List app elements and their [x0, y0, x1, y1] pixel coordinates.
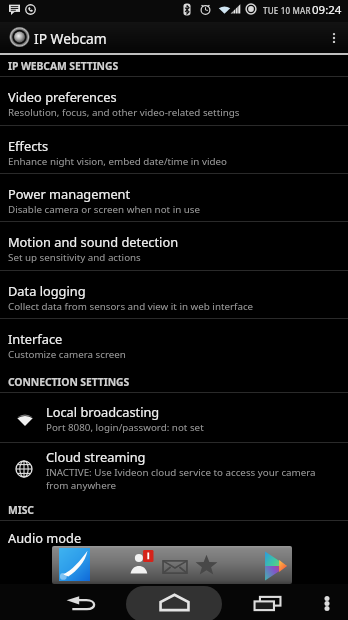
button[interactable]: Power management [0, 174, 348, 222]
staticText: Port 8080, login/password: not set [46, 421, 204, 434]
staticText: MISC [8, 503, 34, 517]
staticText: TUE 10 MAR [263, 5, 311, 16]
button[interactable]: Recent apps [219, 584, 310, 620]
staticText: INACTIVE: Use Ivideon cloud service to a… [46, 466, 332, 492]
staticText: Video preferences [8, 88, 117, 105]
button[interactable]: Mail [162, 558, 188, 576]
button[interactable]: Play Store [263, 551, 289, 581]
button[interactable]: Effects [0, 126, 348, 174]
staticText: 09:24 [312, 2, 342, 18]
staticText: Disable camera or screen when not in use [8, 203, 201, 216]
button[interactable]: Contacts, 1 new [128, 550, 154, 576]
button[interactable]: Messenger [59, 548, 90, 581]
staticText: Interface [8, 330, 63, 347]
staticText: Motion and sound detection [8, 233, 179, 250]
button[interactable]: Audio mode [0, 521, 348, 551]
button[interactable]: More options [320, 22, 348, 53]
staticText: Collect data from sensors and view it in… [8, 300, 254, 313]
staticText: IP Webcam [34, 29, 107, 48]
button[interactable]: Back [0, 584, 129, 620]
button[interactable]: Home [129, 584, 219, 620]
button[interactable]: Local broadcasting [0, 393, 348, 443]
staticText: Set up sensitivity and actions [8, 251, 141, 264]
staticText: Power management [8, 185, 131, 202]
button[interactable]: Video preferences [0, 77, 348, 126]
staticText: Customize camera screen [8, 348, 126, 361]
staticText: Enhance night vision, embed date/time in… [8, 155, 227, 168]
staticText: Local broadcasting [46, 403, 160, 420]
staticText: CONNECTION SETTINGS [8, 375, 130, 389]
staticText: IP WEBCAM SETTINGS [8, 59, 119, 73]
button[interactable]: Cloud streaming [0, 443, 348, 496]
staticText: Cloud streaming [46, 448, 146, 465]
staticText: Audio mode [8, 529, 82, 546]
button[interactable]: Interface [0, 319, 348, 368]
button[interactable]: Data logging [0, 271, 348, 319]
staticText: Effects [8, 137, 49, 154]
staticText: Resolution, focus, and other video-relat… [8, 106, 240, 119]
button[interactable]: Motion and sound detection [0, 222, 348, 271]
button[interactable]: Favorites [195, 557, 218, 576]
button[interactable]: Menu [310, 584, 348, 620]
staticText: Data logging [8, 282, 86, 299]
